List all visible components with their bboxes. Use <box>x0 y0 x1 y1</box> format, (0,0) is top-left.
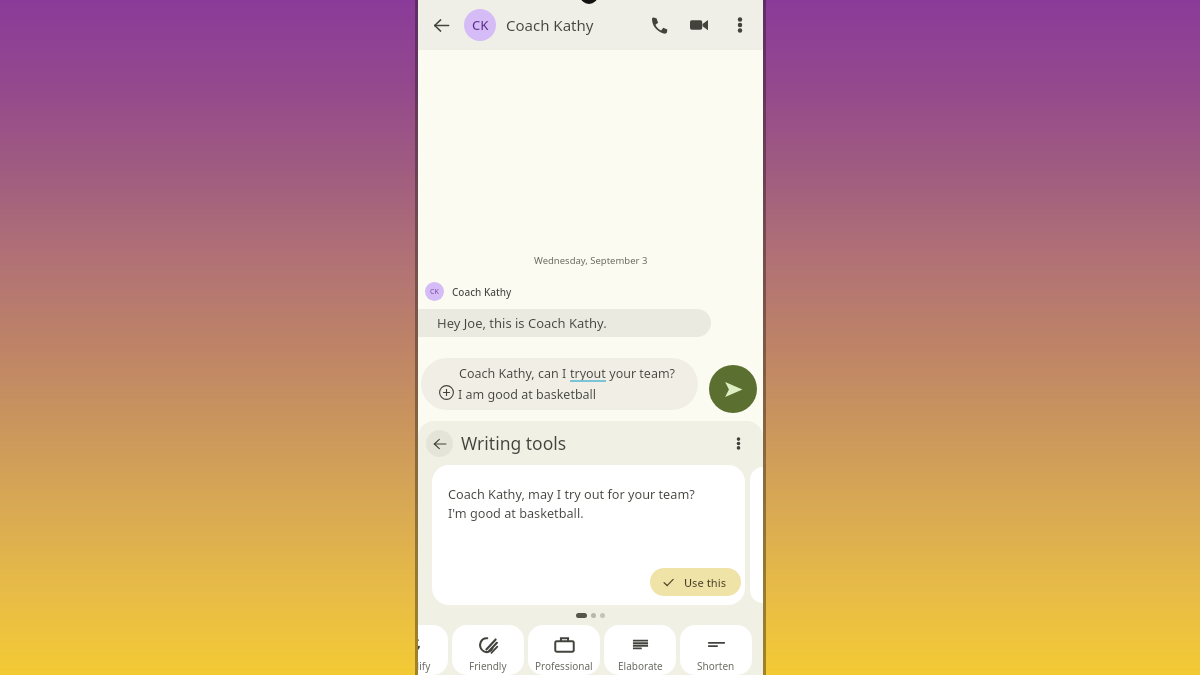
staticText: I'm good at basketball. <box>448 504 584 521</box>
staticText: CK <box>472 16 489 34</box>
button[interactable]: More options <box>725 430 751 456</box>
button[interactable]: Shorten <box>680 625 752 675</box>
staticText: Professional <box>535 659 593 673</box>
staticText: CK <box>430 287 439 297</box>
button[interactable]: Video call <box>684 10 714 40</box>
staticText: Use this <box>684 575 727 590</box>
button[interactable]: Back <box>426 430 453 457</box>
button[interactable]: Coach Kathy, may I try out for your team… <box>432 465 745 605</box>
staticText: tryout <box>570 365 606 382</box>
staticText: Coach Kathy, can I <box>459 365 570 382</box>
staticText: Coach Kathy, may I try out for your team… <box>448 485 695 502</box>
staticText: Coach Kathy <box>506 15 594 35</box>
button[interactable]: Coach Kathy, can I <box>421 358 698 410</box>
button[interactable]: Friendly <box>452 625 524 675</box>
staticText: Friendly <box>469 659 507 673</box>
staticText: Simplify <box>418 659 431 673</box>
button[interactable]: More options <box>726 11 754 39</box>
staticText: Shorten <box>697 659 735 673</box>
staticText: Elaborate <box>618 659 663 673</box>
button[interactable]: Elaborate <box>604 625 676 675</box>
staticText: Coach Kathy <box>452 285 512 299</box>
button[interactable]: Send <box>709 365 757 413</box>
staticText: Writing tools <box>461 431 567 455</box>
button[interactable]: Professional <box>528 625 600 675</box>
button[interactable]: Use this <box>650 568 741 596</box>
button[interactable]: CK <box>464 9 496 41</box>
staticText: Wednesday, September 3 <box>534 254 648 267</box>
staticText: Hey Joe, this is Coach Kathy. <box>437 314 607 332</box>
staticText: your team? <box>606 365 676 382</box>
button[interactable]: Simplify <box>418 625 448 675</box>
staticText: I am good at basketball <box>458 386 597 403</box>
button[interactable]: Call <box>644 10 674 40</box>
button[interactable]: Back <box>429 13 453 37</box>
